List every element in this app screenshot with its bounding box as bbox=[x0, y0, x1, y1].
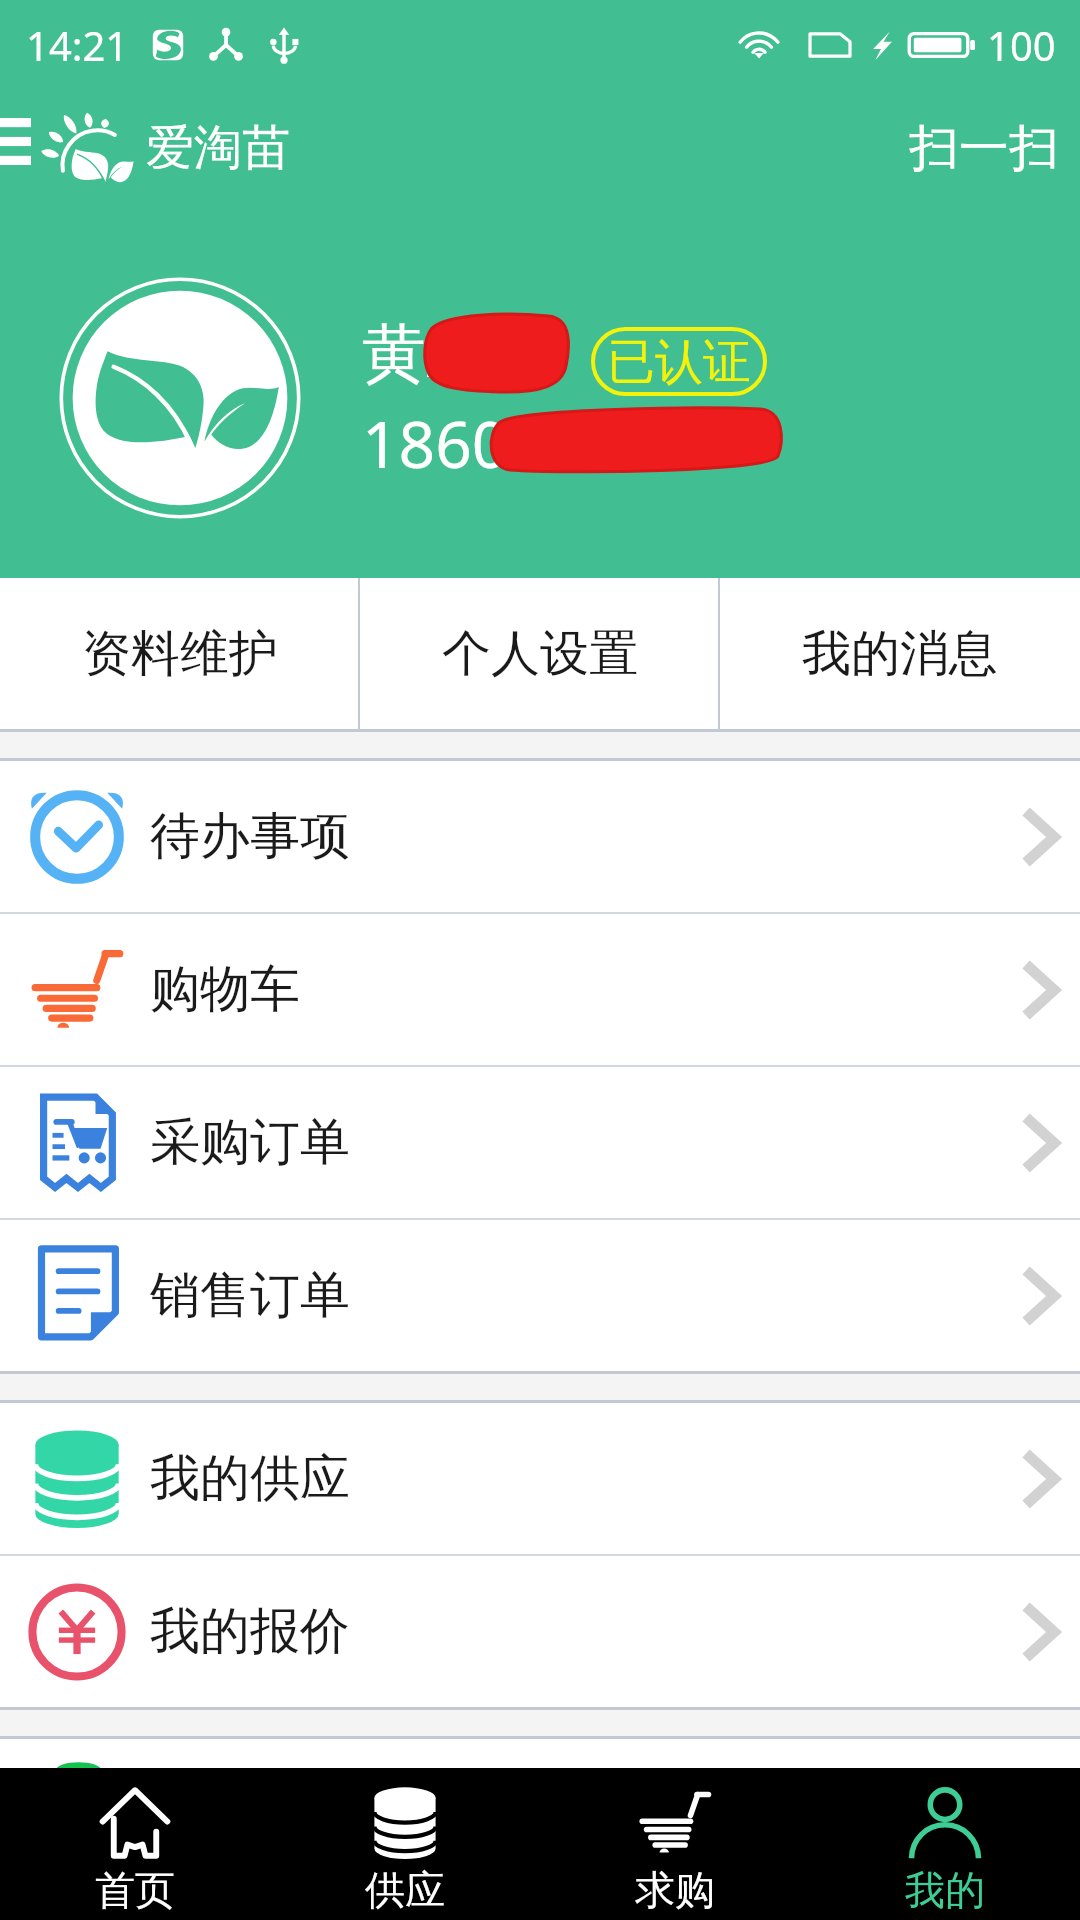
staticText: 扫一扫 bbox=[909, 117, 1059, 180]
staticText: 黄工明 bbox=[362, 314, 554, 395]
staticText: 待办事项 bbox=[150, 805, 350, 868]
button[interactable]: 我的供应 bbox=[0, 1403, 1080, 1554]
staticText: 首页 bbox=[95, 1865, 175, 1915]
staticText: 采购订单 bbox=[150, 1111, 350, 1174]
button[interactable]: 我的报价 bbox=[0, 1556, 1080, 1707]
button[interactable]: 首页 bbox=[0, 1768, 270, 1920]
staticText: 我的 bbox=[905, 1865, 985, 1915]
button[interactable]: 采购订单 bbox=[0, 1067, 1080, 1218]
staticText: 我的消息 bbox=[802, 623, 998, 685]
staticText: 个人设置 bbox=[442, 623, 638, 685]
staticText: 爱淘苗 bbox=[146, 118, 290, 178]
staticText: 供应 bbox=[365, 1865, 445, 1915]
button[interactable]: 销售订单 bbox=[0, 1220, 1080, 1371]
button[interactable]: 待办事项 bbox=[0, 761, 1080, 912]
button[interactable]: 购物车 bbox=[0, 914, 1080, 1065]
staticText: 18600000 bbox=[362, 400, 655, 487]
staticText: 资料维护 bbox=[82, 623, 278, 685]
button[interactable]: 我的消息 bbox=[720, 578, 1080, 729]
staticText: 我的供应 bbox=[150, 1447, 350, 1510]
button[interactable]: 我的 bbox=[810, 1768, 1080, 1920]
button[interactable]: Avatar bbox=[58, 276, 302, 520]
button[interactable]: 扫一扫 bbox=[889, 100, 1080, 191]
staticText: 购物车 bbox=[150, 958, 300, 1021]
button[interactable]: Menu bbox=[0, 118, 31, 165]
staticText: 已认证 bbox=[607, 332, 751, 392]
staticText: 14:21 bbox=[26, 18, 129, 72]
button[interactable] bbox=[0, 1739, 1080, 1891]
button[interactable]: 求购 bbox=[540, 1768, 810, 1920]
button[interactable]: 资料维护 bbox=[0, 578, 360, 729]
staticText: 求购 bbox=[635, 1865, 715, 1915]
staticText: 我的报价 bbox=[150, 1600, 350, 1663]
staticText: 100 bbox=[987, 18, 1056, 72]
button[interactable]: 供应 bbox=[270, 1768, 540, 1920]
button[interactable]: 个人设置 bbox=[360, 578, 720, 729]
staticText: 销售订单 bbox=[150, 1264, 350, 1327]
